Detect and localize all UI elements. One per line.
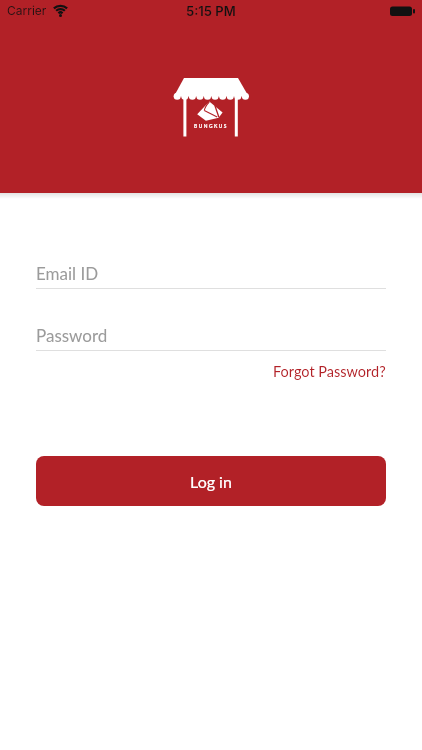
staticText: Carrier (7, 3, 47, 18)
button[interactable]: Forgot Password? (273, 363, 386, 380)
staticText: BUNGKUS (194, 123, 228, 129)
staticText: Password (36, 325, 108, 345)
staticText: 5:15 PM (186, 3, 236, 19)
staticText: Email ID (36, 263, 99, 283)
button[interactable]: Log in (36, 456, 386, 506)
staticText: Log in (190, 472, 232, 491)
